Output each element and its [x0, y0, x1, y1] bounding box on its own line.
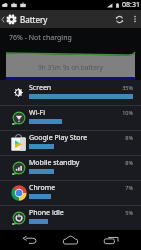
button[interactable]: Chrome: [0, 180, 141, 205]
button[interactable]: Refresh: [110, 10, 128, 28]
staticText: Wi-Fi: [29, 108, 46, 118]
button[interactable]: 9h 31m 9s on battery: [0, 47, 141, 80]
staticText: 35%: [114, 84, 133, 91]
staticText: 10%: [114, 109, 133, 116]
staticText: 8%: [114, 159, 133, 166]
staticText: 9h 31m 9s on battery: [38, 63, 103, 72]
staticText: 5%: [114, 209, 133, 216]
staticText: Chrome: [29, 183, 56, 193]
button[interactable]: Recent apps: [94, 230, 141, 250]
staticText: Screen: [29, 83, 52, 93]
staticText: 08:31: [122, 0, 140, 10]
button[interactable]: Wi-Fi: [0, 105, 141, 130]
button[interactable]: Navigate up: [0, 14, 18, 25]
button[interactable]: Mobile standby: [0, 155, 141, 180]
staticText: Mobile standby: [29, 158, 80, 168]
button[interactable]: More options: [128, 10, 141, 28]
button[interactable]: Back: [0, 230, 47, 250]
button[interactable]: Home: [47, 230, 94, 250]
button[interactable]: Google Play Store: [0, 130, 141, 155]
staticText: Battery: [20, 14, 48, 25]
staticText: 7%: [114, 184, 133, 191]
staticText: 76% - Not charging: [9, 33, 72, 43]
staticText: 8%: [114, 134, 133, 141]
button[interactable]: Screen: [0, 80, 141, 105]
staticText: Phone idle: [29, 208, 64, 218]
staticText: Google Play Store: [29, 133, 88, 143]
button[interactable]: Phone idle: [0, 205, 141, 230]
